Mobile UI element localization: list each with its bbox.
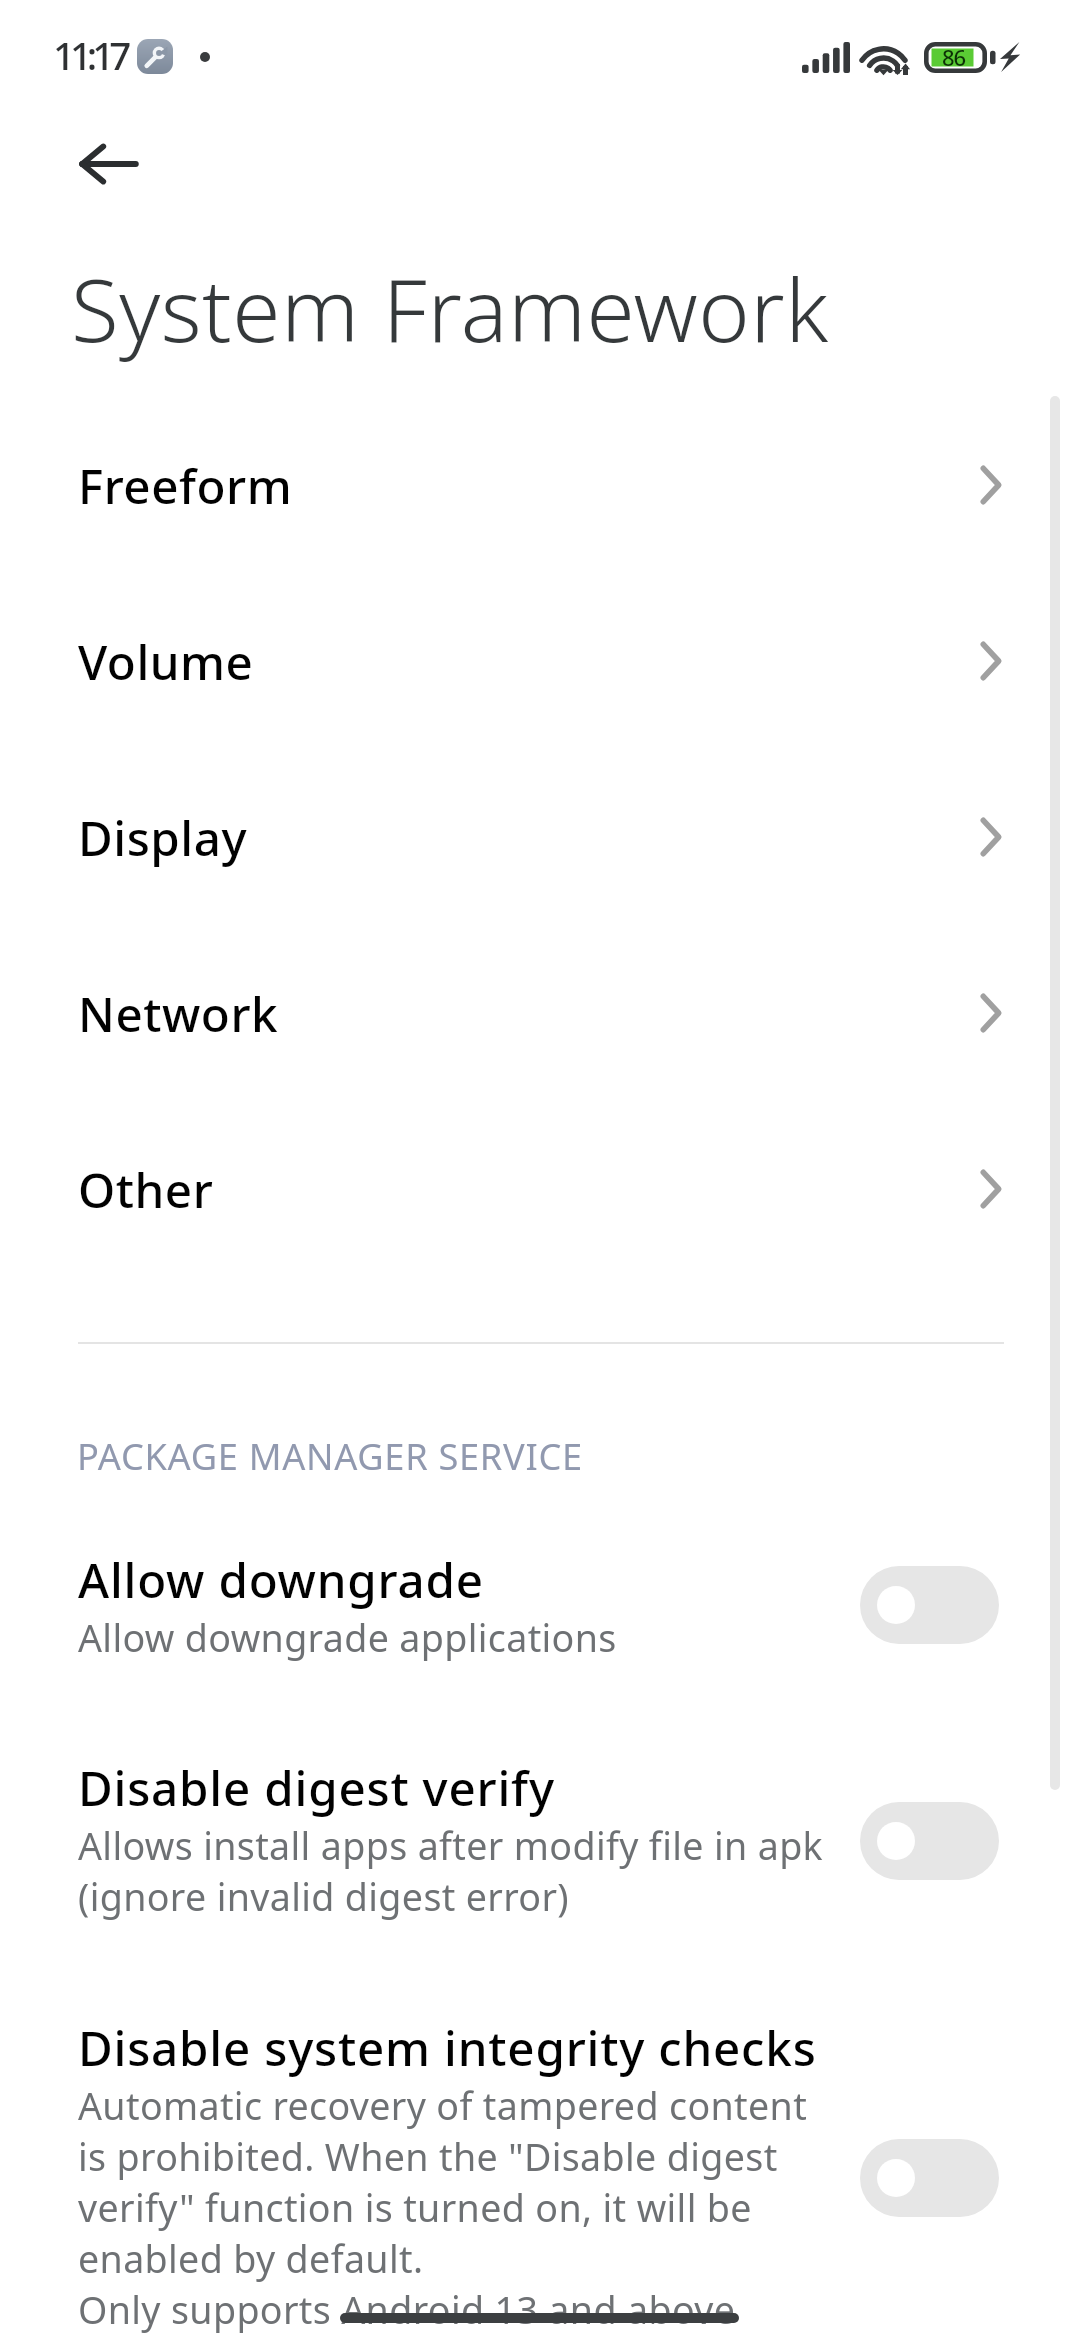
staticText: 86 [942, 42, 966, 72]
button[interactable] [0, 2014, 1080, 2340]
staticText: Disable digest verify [78, 1754, 555, 1820]
staticText: Allow downgrade applications [78, 1612, 617, 1663]
staticText: Allows install apps after modify file in… [78, 1820, 842, 1922]
staticText: Display [78, 805, 248, 870]
button[interactable]: Toggle [860, 2139, 999, 2217]
staticText: PACKAGE MANAGER SERVICE [77, 1431, 583, 1480]
button[interactable] [0, 1754, 1080, 1969]
button[interactable]: Freeform [0, 397, 1080, 573]
button[interactable] [0, 1546, 1080, 1706]
staticText: Allow downgrade [78, 1546, 484, 1612]
button[interactable]: Display [0, 749, 1080, 925]
staticText: Other [78, 1157, 214, 1222]
staticText: System Framework [71, 249, 829, 368]
staticText: Freeform [78, 453, 293, 518]
staticText: Disable system integrity checks [78, 2014, 817, 2080]
button[interactable]: Other [0, 1101, 1080, 1277]
button[interactable]: Back [57, 112, 161, 216]
staticText: Network [78, 981, 279, 1046]
staticText: 11:17 [53, 29, 127, 81]
button[interactable]: Toggle [860, 1566, 999, 1644]
button[interactable]: Network [0, 925, 1080, 1101]
button[interactable]: Toggle [860, 1802, 999, 1880]
button[interactable]: Volume [0, 573, 1080, 749]
staticText: Volume [78, 629, 254, 694]
staticText: Automatic recovery of tampered content i… [78, 2080, 842, 2335]
